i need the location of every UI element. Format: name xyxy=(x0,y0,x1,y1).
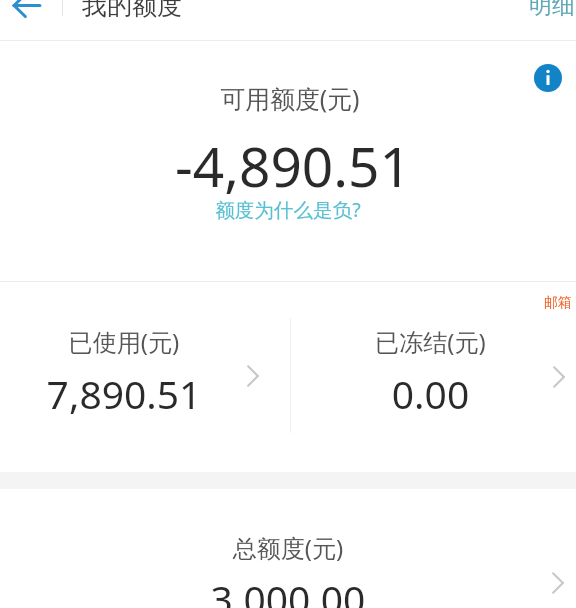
staticText: 明细 xyxy=(529,0,575,20)
button[interactable]: Info xyxy=(528,58,568,98)
staticText: 3,000.00 xyxy=(0,572,576,608)
staticText: 额度为什么是负? xyxy=(215,196,361,223)
staticText: 我的额度 xyxy=(82,0,182,21)
staticText: -4,890.51 xyxy=(5,128,576,203)
staticText: 邮箱 xyxy=(544,294,572,312)
staticText: 已使用(元) xyxy=(0,325,269,358)
staticText: 可用额度(元) xyxy=(2,81,576,115)
staticText: 已冻结(元) xyxy=(288,325,573,358)
button[interactable]: 额度为什么是负? xyxy=(209,193,367,226)
button[interactable]: Back xyxy=(0,0,52,25)
button[interactable]: 已冻结(元) xyxy=(291,282,576,442)
staticText: 7,890.51 xyxy=(0,367,269,420)
button[interactable]: 明细 xyxy=(517,0,576,22)
button[interactable]: 已使用(元) xyxy=(0,282,290,442)
staticText: 总额度(元) xyxy=(0,531,576,564)
staticText: 0.00 xyxy=(288,367,573,420)
button[interactable]: 总额度(元) xyxy=(0,489,576,608)
